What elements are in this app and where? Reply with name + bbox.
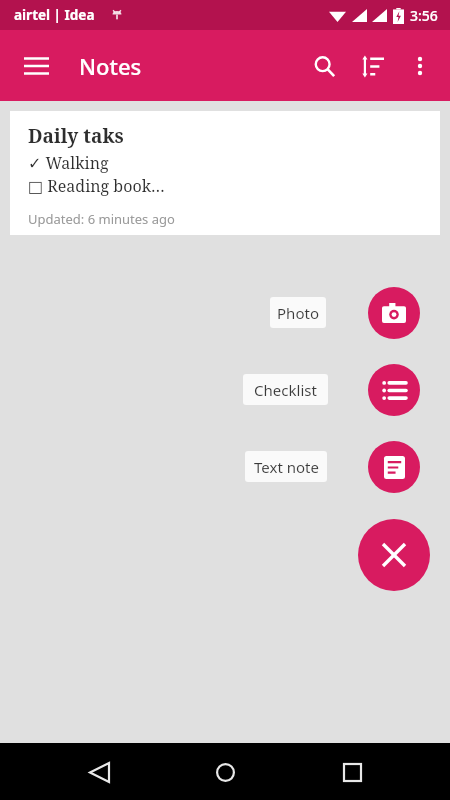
button[interactable]: Search	[300, 42, 348, 90]
staticText: □ Reading book…	[28, 175, 165, 197]
staticText: Photo	[277, 303, 319, 323]
staticText: Text note	[254, 457, 319, 477]
button[interactable]: Sort	[348, 42, 396, 90]
button[interactable]: Home	[197, 744, 253, 800]
button[interactable]: Recent apps	[324, 744, 380, 800]
button[interactable]: Checklist	[243, 374, 328, 405]
staticText: 3:56	[410, 6, 438, 25]
button[interactable]: More options	[396, 42, 444, 90]
button[interactable]: Back	[71, 744, 127, 800]
button[interactable]: Photo	[270, 297, 326, 328]
staticText: Updated: 6 minutes ago	[28, 210, 175, 228]
staticText: Checklist	[254, 380, 317, 400]
staticText: airtel | Idea	[14, 6, 95, 24]
staticText: Daily taks	[28, 123, 124, 149]
button[interactable]: Daily taks	[10, 111, 440, 235]
button[interactable]: Checklist	[368, 364, 420, 416]
button[interactable]: Text note	[368, 441, 420, 493]
staticText: ✓ Walking	[28, 152, 109, 174]
button[interactable]: Open navigation drawer	[12, 42, 60, 90]
button[interactable]: Text note	[245, 451, 327, 482]
staticText: Notes	[79, 51, 142, 81]
button[interactable]: Close menu	[358, 519, 430, 591]
button[interactable]: Photo	[368, 287, 420, 339]
